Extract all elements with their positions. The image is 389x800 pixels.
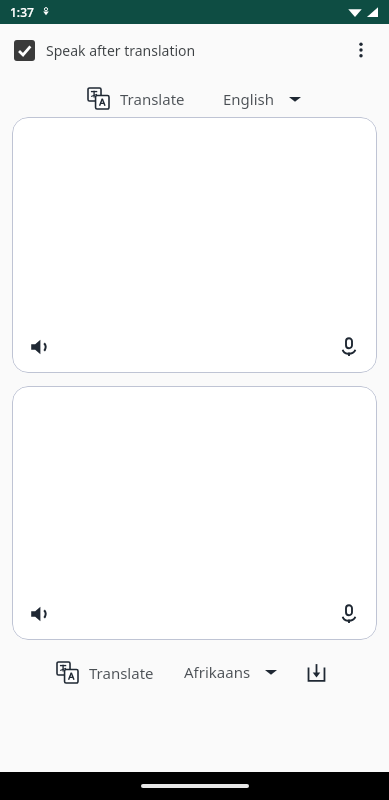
button[interactable]: Speak text: [12, 117, 377, 373]
button[interactable]: Speak text: [22, 329, 58, 365]
button[interactable]: Speak after translation: [10, 36, 200, 65]
button[interactable]: Afrikaans: [184, 662, 277, 682]
button[interactable]: English: [223, 89, 301, 109]
button[interactable]: Translate: [88, 88, 185, 109]
button[interactable]: Download language: [299, 655, 333, 689]
button[interactable]: Speak text: [12, 386, 377, 640]
staticText: Afrikaans: [184, 662, 251, 682]
button[interactable]: More options: [341, 30, 381, 70]
staticText: Speak after translation: [46, 41, 196, 60]
button[interactable]: Voice input: [331, 329, 367, 365]
staticText: English: [223, 89, 275, 109]
staticText: Translate: [120, 89, 185, 109]
staticText: 1:37: [10, 4, 34, 20]
button[interactable]: Voice input: [331, 596, 367, 632]
staticText: Translate: [89, 663, 154, 683]
button[interactable]: Translate: [57, 662, 154, 683]
button[interactable]: Speak text: [22, 596, 58, 632]
